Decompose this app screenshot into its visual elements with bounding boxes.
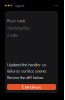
staticText: checking files bbox=[7, 25, 30, 31]
staticText: agent bbox=[15, 3, 24, 8]
staticText: Updated the handler so bbox=[7, 62, 46, 67]
staticText: Continue bbox=[22, 84, 41, 90]
staticText: Run task bbox=[7, 18, 25, 23]
staticText: 2 edits bbox=[7, 33, 18, 38]
staticText: •• bbox=[54, 3, 58, 8]
button[interactable]: Continue bbox=[7, 84, 56, 90]
staticText: failures surface sooner. bbox=[7, 68, 47, 74]
staticText: Review the diff below. bbox=[7, 75, 44, 80]
